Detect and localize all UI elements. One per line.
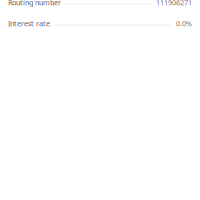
staticText: Routing number xyxy=(8,0,61,7)
button[interactable]: Interest rate xyxy=(0,13,200,34)
staticText: Interest rate xyxy=(8,19,50,28)
staticText: 0.0% xyxy=(176,19,192,28)
staticText: 111906271 xyxy=(156,0,192,7)
button[interactable]: Routing number xyxy=(0,0,200,13)
